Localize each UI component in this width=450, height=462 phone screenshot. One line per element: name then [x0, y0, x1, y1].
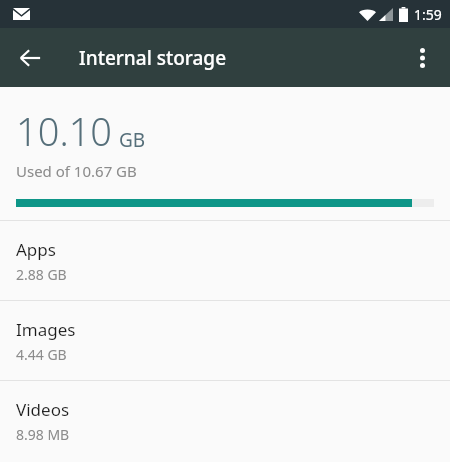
staticText: Images	[16, 318, 76, 341]
staticText: 4.44 GB	[16, 345, 67, 364]
staticText: 2.88 GB	[16, 265, 67, 284]
button[interactable]: Apps	[0, 221, 450, 300]
staticText: GB	[119, 127, 146, 153]
staticText: Videos	[16, 398, 70, 421]
staticText: Internal storage	[79, 45, 227, 71]
button[interactable]: More options	[400, 36, 444, 80]
staticText: 10.10	[16, 105, 113, 157]
staticText: Used of 10.67 GB	[16, 161, 137, 181]
button[interactable]: Back	[8, 36, 52, 80]
button[interactable]: Videos	[0, 381, 450, 460]
staticText: Apps	[16, 238, 56, 261]
staticText: 8.98 MB	[16, 425, 70, 444]
button[interactable]: Images	[0, 301, 450, 380]
staticText: 1:59	[414, 5, 442, 24]
